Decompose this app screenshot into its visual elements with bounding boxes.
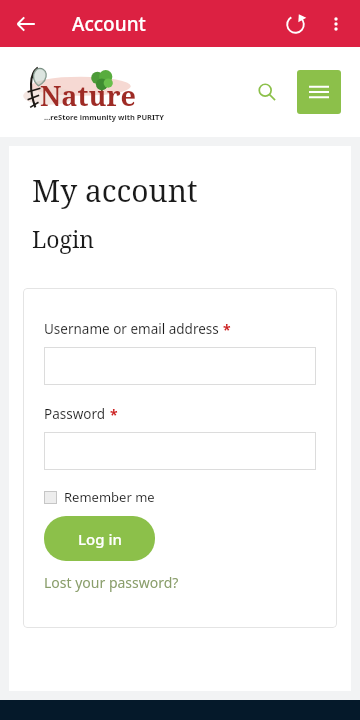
button[interactable]: Text field	[44, 347, 316, 385]
button[interactable]: Remember me	[44, 488, 155, 506]
staticText: *	[110, 405, 118, 424]
staticText: Account	[72, 11, 146, 37]
staticText: Login	[32, 223, 95, 254]
button[interactable]: Text field	[44, 432, 316, 470]
staticText: Lost your password?	[44, 573, 179, 592]
staticText: My account	[32, 170, 198, 211]
staticText: *	[223, 320, 231, 339]
button[interactable]: Menu	[297, 70, 341, 114]
staticText: Username or email address	[44, 320, 219, 338]
button[interactable]: Nature home	[18, 60, 146, 124]
button[interactable]: Search	[250, 75, 284, 109]
staticText: Nature	[40, 77, 136, 114]
staticText: Remember me	[64, 488, 155, 506]
staticText: Log in	[78, 529, 122, 549]
staticText: Password	[44, 405, 106, 423]
button[interactable]: Lost your password?	[44, 573, 179, 592]
button[interactable]: Log in	[44, 516, 155, 561]
button[interactable]: Refresh	[274, 3, 316, 45]
staticText: ...reStore immunity with PURITY	[44, 112, 164, 122]
button[interactable]: More options	[316, 4, 356, 44]
button[interactable]: Back	[6, 4, 46, 44]
